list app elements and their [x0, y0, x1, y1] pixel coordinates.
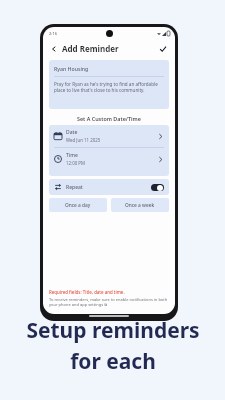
staticText: Repeat — [66, 184, 83, 191]
button[interactable]: Repeat — [49, 179, 169, 195]
staticText: Add Reminder — [62, 43, 119, 54]
staticText: 12:00 PM — [66, 160, 86, 166]
staticText: Date — [66, 129, 78, 136]
staticText: for each — [70, 347, 156, 376]
staticText: Pray for Ryan as he's trying to find an … — [54, 81, 164, 93]
staticText: Once a week — [125, 202, 155, 209]
staticText: Ryan Housing — [54, 65, 89, 72]
button[interactable]: Once a week — [111, 198, 169, 212]
staticText: Set A Custom Date/Time — [77, 115, 141, 122]
staticText: To receive reminders, make sure to enabl… — [49, 297, 169, 308]
button[interactable]: Date — [49, 125, 169, 147]
staticText: Wed Jun 11 2025 — [66, 137, 101, 143]
staticText: Once a day — [65, 202, 91, 209]
button[interactable]: Back — [49, 44, 59, 54]
button[interactable]: Time — [49, 148, 169, 170]
button[interactable]: Once a day — [49, 198, 107, 212]
staticText: Setup reminders — [26, 316, 200, 345]
staticText: Time — [66, 152, 78, 159]
button[interactable]: Ryan Housing — [49, 60, 169, 109]
button[interactable]: Repeat toggle — [151, 184, 164, 191]
staticText: 2:16 — [49, 31, 57, 36]
button[interactable]: Save reminder — [157, 43, 169, 55]
staticText: Required fields: Title, date and time. — [49, 289, 125, 295]
